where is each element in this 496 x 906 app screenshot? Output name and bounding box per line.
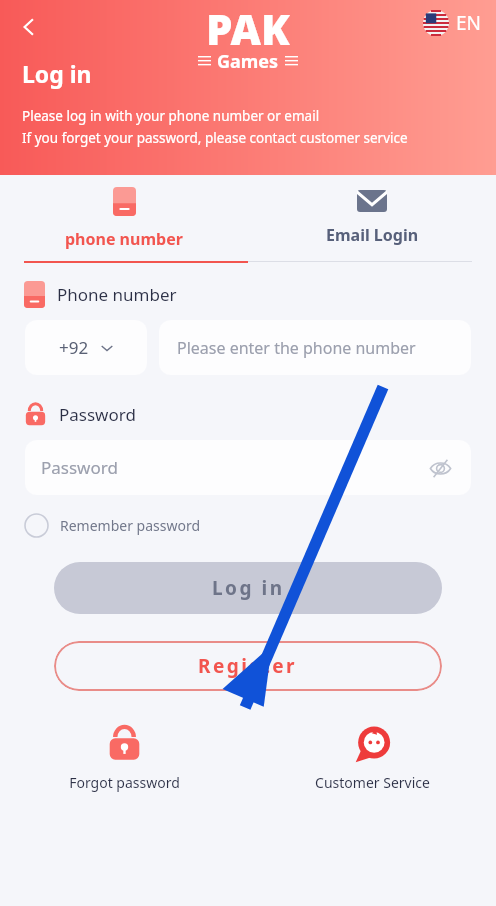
button[interactable]: Log in [54, 562, 442, 614]
button[interactable]: Forgot password [0, 724, 248, 792]
staticText: Log in [212, 575, 285, 601]
button[interactable]: Register [54, 641, 442, 691]
staticText: If you forget your password, please cont… [22, 129, 408, 147]
staticText: PAK [206, 0, 290, 57]
staticText: +92 [59, 336, 89, 359]
button[interactable]: Back [8, 6, 50, 48]
staticText: Customer Service [315, 773, 430, 792]
staticText: phone number [65, 228, 183, 250]
staticText: Log in [22, 58, 92, 89]
button[interactable]: Remember password [24, 513, 201, 538]
button[interactable]: Password [25, 440, 471, 495]
button[interactable]: EN [423, 10, 482, 36]
staticText: EN [456, 10, 482, 36]
button[interactable]: Please enter the phone number [159, 320, 471, 375]
button[interactable]: phone number [0, 175, 248, 261]
staticText: Password [41, 456, 118, 479]
staticText: Please log in with your phone number or … [22, 107, 320, 125]
staticText: Email Login [326, 224, 419, 246]
button[interactable]: Customer Service [248, 724, 496, 792]
staticText: Phone number [57, 283, 177, 306]
button[interactable]: Show password [423, 451, 457, 485]
staticText: Games [217, 49, 279, 74]
staticText: Remember password [60, 516, 201, 535]
staticText: Please enter the phone number [177, 337, 416, 359]
staticText: Register [198, 653, 298, 679]
staticText: Forgot password [69, 773, 180, 792]
button[interactable]: +92 [25, 320, 147, 375]
button[interactable]: Email Login [248, 175, 496, 261]
staticText: Password [59, 403, 136, 426]
